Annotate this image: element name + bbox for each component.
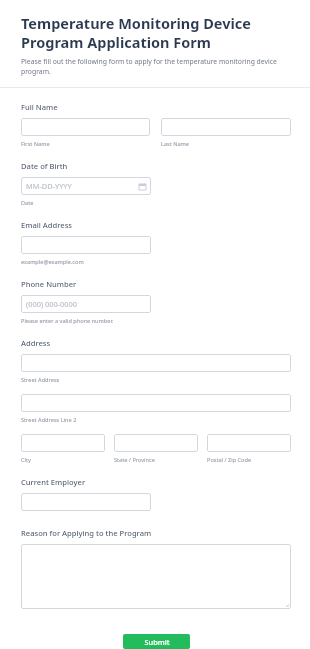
staticText: Street Address [21,376,60,384]
staticText: Current Employer [21,477,86,487]
staticText: Date [21,199,34,207]
button[interactable] [21,118,150,136]
staticText: example@example.com [21,258,84,266]
button[interactable]: Submit [123,634,190,649]
staticText: Address [21,338,51,348]
button[interactable] [21,236,151,254]
button[interactable] [21,354,291,372]
button[interactable] [207,434,291,452]
button[interactable]: (000) 000-0000 [21,295,151,313]
staticText: MM-DD-YYYY [26,181,72,191]
button[interactable]: MM-DD-YYYY [21,177,151,195]
button[interactable] [161,118,291,136]
button[interactable] [21,544,291,609]
staticText: Postal / Zip Code [207,456,252,464]
staticText: City [21,456,31,464]
staticText: Date of Birth [21,161,68,171]
button[interactable] [114,434,198,452]
button[interactable] [21,493,151,511]
staticText: Please enter a valid phone number. [21,317,114,325]
staticText: Submit [144,637,170,647]
staticText: Reason for Applying to the Program [21,528,152,538]
staticText: Phone Number [21,279,77,289]
button[interactable] [21,434,105,452]
staticText: Last Name [161,140,189,148]
staticText: Email Address [21,220,73,230]
staticText: (000) 000-0000 [26,299,78,309]
staticText: Street Address Line 2 [21,416,77,424]
staticText: Full Name [21,102,58,112]
staticText: First Name [21,140,50,148]
staticText: State / Province [114,456,155,464]
staticText: Temperature Monitoring Device Program Ap… [21,13,291,52]
staticText: Please fill out the following form to ap… [21,57,291,76]
button[interactable] [21,394,291,412]
